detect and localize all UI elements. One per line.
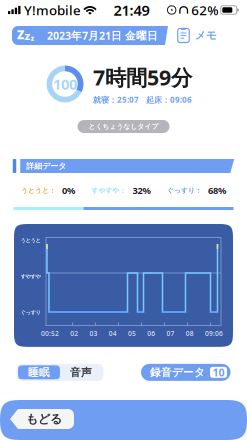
- staticText: メモ: [195, 29, 217, 42]
- staticText: Y!mobile: [24, 1, 81, 19]
- staticText: ぐっすり: [20, 309, 40, 316]
- staticText: 就寝：25:07: [93, 94, 139, 105]
- button[interactable]: Z: [12, 26, 168, 45]
- staticText: 100: [53, 74, 77, 94]
- staticText: 詳細データ: [26, 161, 66, 171]
- staticText: すやすや：: [91, 186, 126, 195]
- staticText: 音声: [70, 366, 92, 379]
- staticText: ぐっすり：: [167, 186, 202, 195]
- staticText: 2023年7月21日 金曜日: [47, 28, 158, 43]
- staticText: 21:49: [114, 0, 150, 20]
- staticText: とくちょうなしタイプ: [88, 122, 158, 131]
- staticText: 00:52: [41, 329, 59, 338]
- staticText: 08: [186, 329, 194, 338]
- staticText: すやすや: [20, 273, 40, 280]
- staticText: 睡眠: [28, 366, 50, 379]
- staticText: うとうと: [20, 237, 40, 244]
- staticText: Z: [24, 30, 30, 42]
- staticText: 05: [128, 329, 136, 338]
- staticText: 0%: [62, 184, 75, 197]
- staticText: 03: [89, 329, 97, 338]
- staticText: 09:06: [205, 329, 223, 338]
- button[interactable]: もどる: [10, 409, 74, 429]
- button[interactable]: メモ: [177, 28, 217, 43]
- staticText: 07: [166, 329, 174, 338]
- staticText: Z: [17, 27, 24, 42]
- staticText: 04: [109, 329, 117, 338]
- staticText: 32%: [132, 184, 150, 197]
- button[interactable]: 睡眠: [18, 365, 60, 379]
- staticText: 62%: [191, 1, 218, 19]
- button[interactable]: 録音データ: [141, 364, 230, 381]
- staticText: 06: [147, 329, 155, 338]
- staticText: うとうと：: [21, 186, 56, 195]
- staticText: 起床：09:06: [146, 94, 192, 105]
- staticText: もどる: [26, 412, 62, 426]
- staticText: 録音データ: [150, 366, 205, 379]
- staticText: 10: [212, 365, 224, 379]
- staticText: 68%: [208, 184, 226, 197]
- staticText: z: [31, 34, 34, 42]
- staticText: 02: [70, 329, 78, 338]
- button[interactable]: 音声: [60, 365, 102, 379]
- staticText: 7時間59分: [93, 63, 192, 91]
